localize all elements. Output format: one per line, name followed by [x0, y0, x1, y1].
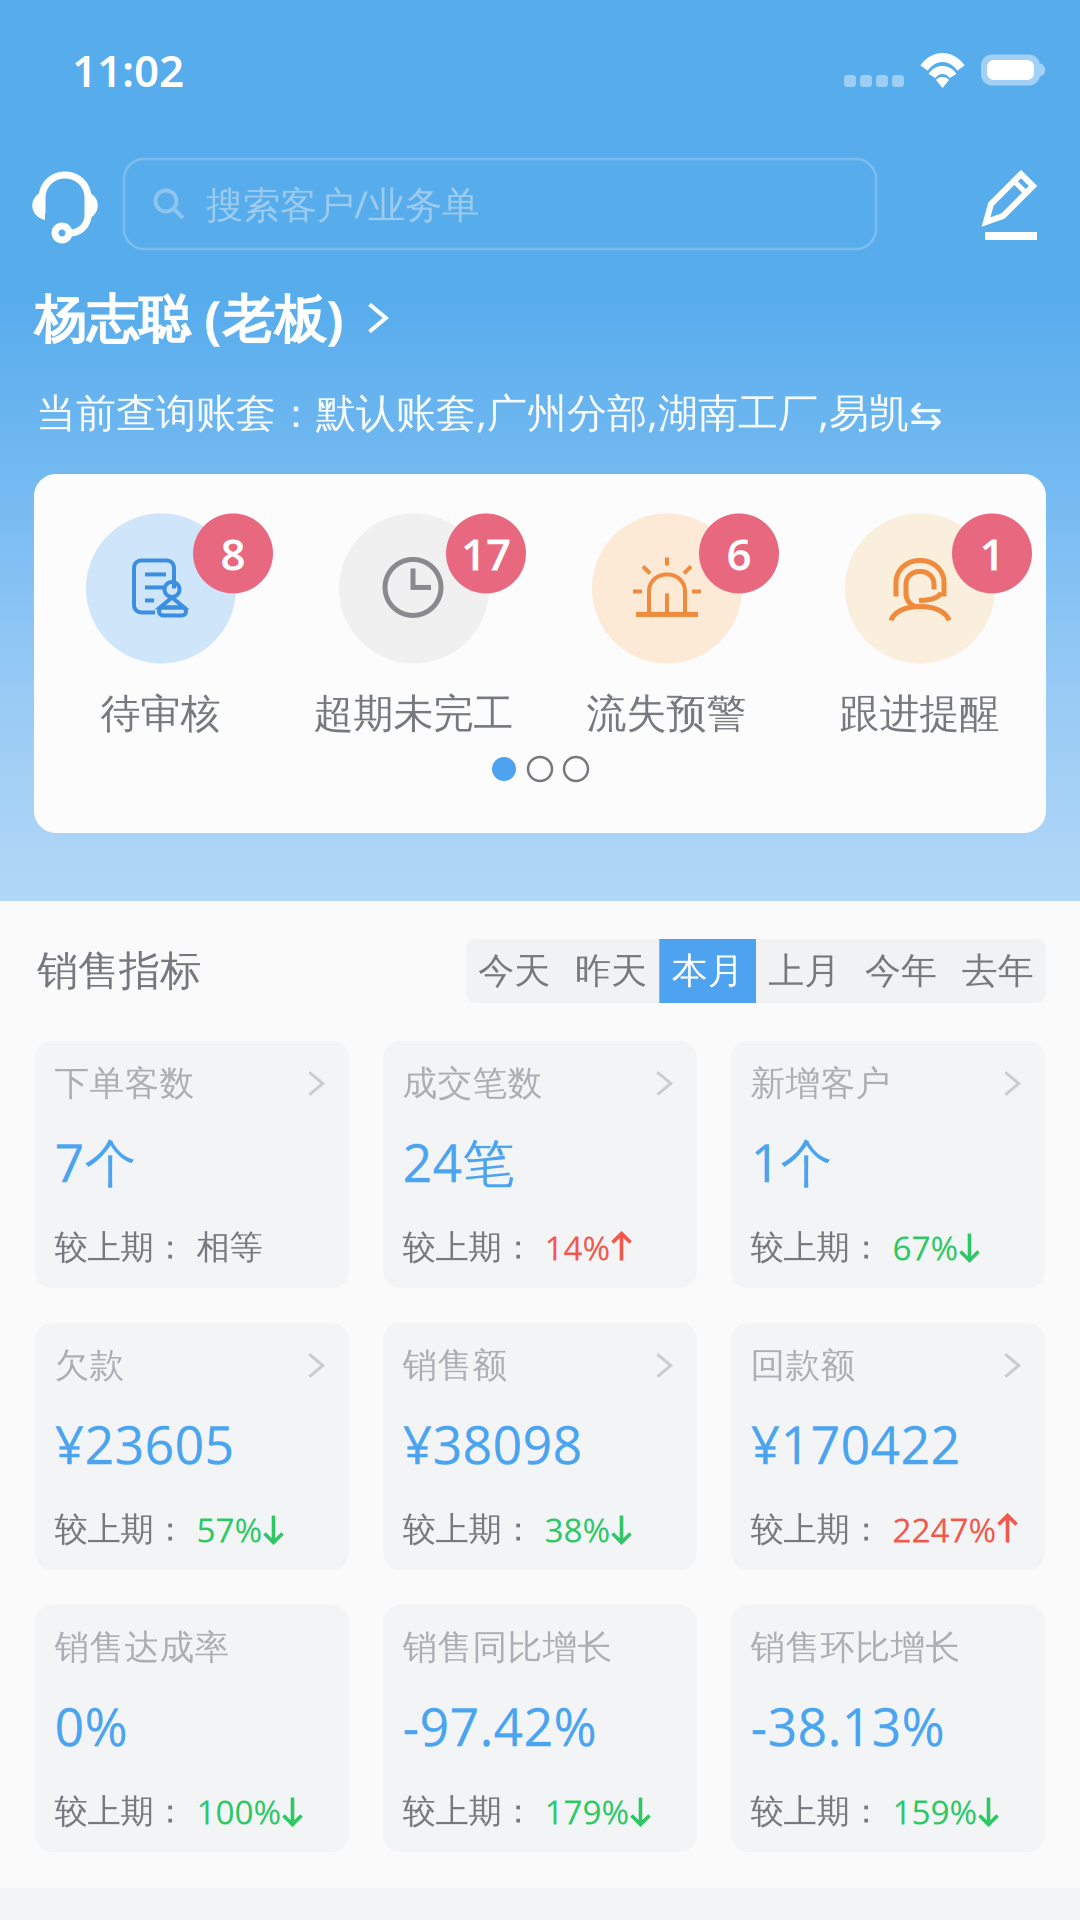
staticText: ¥170422: [750, 1409, 960, 1479]
staticText: 流失预警: [586, 689, 746, 738]
staticText: 超期未完工: [313, 689, 513, 738]
staticText: 较上期：: [54, 1227, 196, 1268]
button[interactable]: 新增客户: [731, 1041, 1044, 1288]
staticText: 销售达成率: [54, 1626, 229, 1669]
staticText: 销售环比增长: [750, 1626, 960, 1669]
staticText: -38.13%: [750, 1691, 944, 1761]
staticText: 0%: [54, 1691, 127, 1761]
staticText: 当前查询账套：默认账套,广州分部,湖南工厂,易凯⇆: [36, 385, 943, 438]
staticText: 较上期：: [402, 1227, 544, 1268]
staticText: 179%: [544, 1789, 629, 1834]
staticText: 1: [979, 524, 1004, 583]
staticText: 67%: [892, 1225, 958, 1270]
button[interactable]: 成交笔数: [383, 1041, 696, 1288]
button[interactable]: 写单: [956, 157, 1066, 251]
staticText: 11:02: [72, 41, 184, 99]
button[interactable]: 上月: [756, 939, 853, 1003]
staticText: 2247%: [892, 1507, 996, 1552]
staticText: 欠款: [54, 1344, 124, 1387]
staticText: 去年: [962, 949, 1034, 993]
staticText: -97.42%: [402, 1691, 596, 1761]
button[interactable]: 8: [34, 474, 287, 736]
staticText: 回款额: [750, 1344, 855, 1387]
staticText: 跟进提醒: [839, 689, 999, 738]
staticText: 38%: [544, 1507, 610, 1552]
staticText: 搜索客户/业务单: [206, 179, 479, 229]
staticText: 159%: [892, 1789, 977, 1834]
button[interactable]: 今年: [853, 939, 949, 1003]
staticText: 下单客数: [54, 1062, 194, 1105]
button[interactable]: 销售同比增长: [383, 1605, 696, 1852]
staticText: 较上期：: [54, 1791, 196, 1832]
button[interactable]: 销售环比增长: [731, 1605, 1044, 1852]
button[interactable]: 去年: [949, 939, 1046, 1003]
button[interactable]: 6: [540, 474, 793, 736]
staticText: 较上期：: [750, 1509, 892, 1550]
button[interactable]: 回款额: [731, 1323, 1044, 1570]
button[interactable]: 1: [793, 474, 1046, 736]
staticText: 24笔: [402, 1127, 514, 1197]
button[interactable]: 客服: [8, 157, 124, 251]
staticText: 较上期：: [750, 1227, 892, 1268]
staticText: 今年: [865, 949, 937, 993]
staticText: 今天: [478, 949, 550, 993]
button[interactable]: 杨志聪 (老板): [0, 268, 1080, 368]
button[interactable]: 欠款: [35, 1323, 348, 1570]
staticText: 较上期：: [402, 1791, 544, 1832]
staticText: 本月: [672, 949, 744, 993]
staticText: 57%: [196, 1507, 262, 1552]
staticText: ¥23605: [54, 1409, 234, 1479]
staticText: 1个: [750, 1127, 832, 1197]
staticText: 销售指标: [37, 946, 201, 996]
staticText: 杨志聪 (老板): [34, 283, 344, 353]
staticText: 6: [726, 524, 751, 583]
button[interactable]: 搜索客户/业务单: [124, 159, 876, 249]
staticText: 较上期：: [750, 1791, 892, 1832]
staticText: 7个: [54, 1127, 136, 1197]
staticText: 8: [220, 524, 245, 583]
staticText: 14%: [544, 1225, 610, 1270]
staticText: 昨天: [575, 949, 647, 993]
button[interactable]: 今天: [466, 939, 563, 1003]
staticText: 待审核: [100, 689, 220, 738]
button[interactable]: 销售额: [383, 1323, 696, 1570]
button[interactable]: 销售达成率: [35, 1605, 348, 1852]
button[interactable]: 下单客数: [35, 1041, 348, 1288]
staticText: 上月: [768, 949, 840, 993]
staticText: 100%: [196, 1789, 281, 1834]
staticText: 较上期：: [54, 1509, 196, 1550]
staticText: 销售同比增长: [402, 1626, 612, 1669]
button[interactable]: 17: [287, 474, 540, 736]
staticText: 成交笔数: [402, 1062, 542, 1105]
button[interactable]: 本月: [659, 939, 756, 1003]
button[interactable]: 当前查询账套：默认账套,广州分部,湖南工厂,易凯⇆: [0, 368, 1080, 456]
button[interactable]: 昨天: [563, 939, 659, 1003]
staticText: 较上期：: [402, 1509, 544, 1550]
staticText: 销售额: [402, 1344, 507, 1387]
staticText: ¥38098: [402, 1409, 582, 1479]
staticText: 17: [461, 524, 511, 583]
staticText: 新增客户: [750, 1062, 890, 1105]
staticText: 相等: [196, 1227, 262, 1268]
